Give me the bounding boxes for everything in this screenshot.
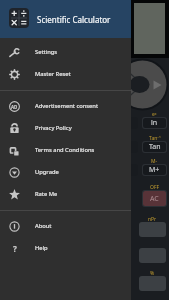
staticText: Advertisement consent <box>35 102 98 110</box>
staticText: Privacy Policy <box>35 124 72 132</box>
button[interactable]: M+ <box>143 165 166 175</box>
button[interactable]: Upgrade <box>0 161 131 183</box>
button[interactable]: About <box>0 215 131 237</box>
button[interactable]: Settings <box>0 41 131 63</box>
button[interactable] <box>139 222 166 237</box>
button[interactable] <box>139 276 166 291</box>
staticText: % <box>150 270 155 277</box>
button[interactable]: Terms and Conditions <box>0 139 131 161</box>
staticText: AC <box>150 194 159 204</box>
button[interactable]: ? <box>0 237 131 259</box>
button[interactable]: Privacy Policy <box>0 117 131 139</box>
staticText: Rate Me <box>35 190 58 198</box>
button[interactable]: Rate Me <box>0 183 131 205</box>
button[interactable]: Tan <box>143 142 166 152</box>
button[interactable]: ln <box>143 118 166 128</box>
staticText: ? <box>13 243 17 254</box>
staticText: M- <box>151 158 158 165</box>
staticText: OFF <box>150 184 160 191</box>
staticText: Settings <box>35 48 58 56</box>
staticText: Help <box>35 244 48 252</box>
staticText: eˣ <box>152 111 157 118</box>
staticText: Upgrade <box>35 168 59 176</box>
staticText: About <box>35 222 52 230</box>
button[interactable] <box>128 117 138 129</box>
button[interactable]: AD <box>0 95 131 117</box>
staticText: Scientific Calculator <box>37 14 111 25</box>
staticText: ln <box>151 118 158 128</box>
staticText: Terms and Conditions <box>35 146 95 154</box>
button[interactable]: AC <box>143 191 166 206</box>
staticText: AD <box>11 104 18 110</box>
button[interactable] <box>128 164 138 176</box>
staticText: nPr <box>148 216 157 223</box>
staticText: Master Reset <box>35 70 71 78</box>
staticText: Tan <box>149 142 161 152</box>
staticText: Tan⁻¹ <box>149 135 161 142</box>
button[interactable]: Master Reset <box>0 63 131 85</box>
button[interactable] <box>139 248 166 263</box>
button[interactable] <box>128 141 138 153</box>
staticText: M+ <box>149 165 160 175</box>
